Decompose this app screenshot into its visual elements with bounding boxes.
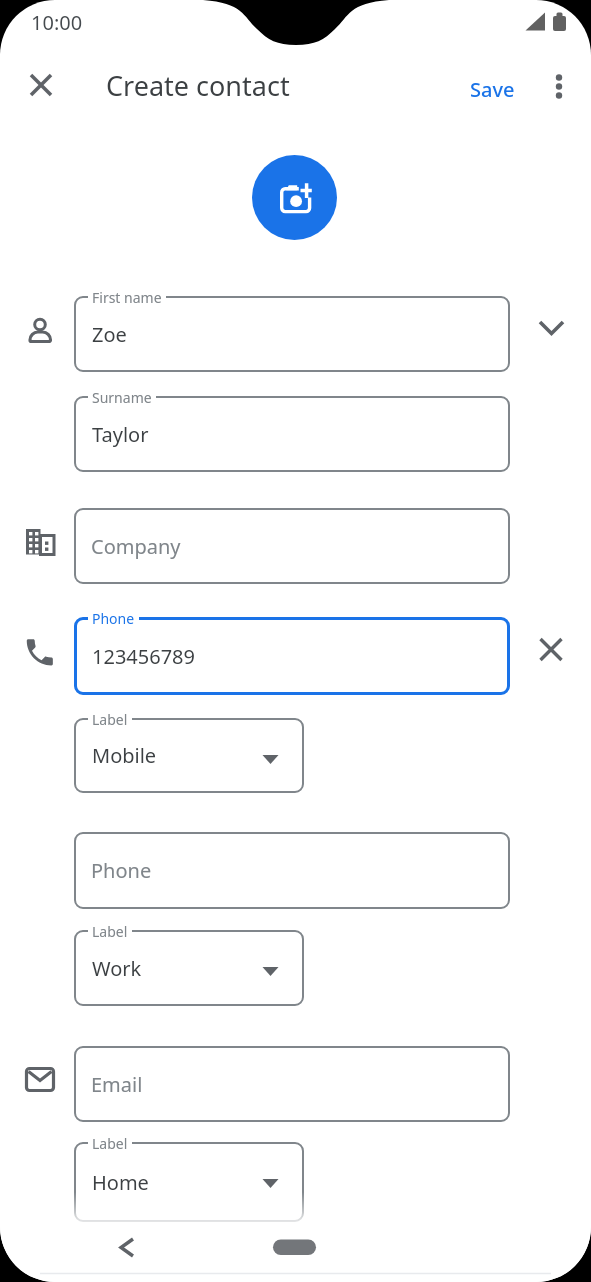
staticText: Work <box>92 955 142 982</box>
button[interactable] <box>541 68 577 104</box>
staticText: Mobile <box>92 742 157 769</box>
button[interactable]: Zoe <box>74 296 510 372</box>
button[interactable]: Work <box>74 930 304 1006</box>
staticText: First name <box>92 288 162 307</box>
staticText: Email <box>91 1071 143 1098</box>
button[interactable] <box>109 1230 145 1266</box>
staticText: Label <box>92 1134 128 1153</box>
button[interactable]: Mobile <box>74 718 304 793</box>
button[interactable] <box>252 155 337 240</box>
staticText: 123456789 <box>92 643 195 670</box>
button[interactable]: Save <box>460 68 525 111</box>
button[interactable]: Home <box>74 1142 304 1222</box>
staticText: Taylor <box>92 421 149 448</box>
button[interactable] <box>533 310 569 346</box>
button[interactable]: 123456789 <box>74 617 510 695</box>
button[interactable]: Company <box>74 508 510 584</box>
button[interactable]: Taylor <box>74 396 510 472</box>
staticText: Create contact <box>106 67 290 104</box>
staticText: Surname <box>92 388 152 407</box>
button[interactable]: Email <box>74 1046 510 1122</box>
button[interactable] <box>23 67 59 103</box>
button[interactable] <box>273 1236 316 1256</box>
button[interactable]: Phone <box>74 832 510 909</box>
staticText: Label <box>92 710 128 729</box>
staticText: Save <box>470 76 515 103</box>
staticText: Phone <box>92 609 135 628</box>
staticText: Phone <box>91 857 152 884</box>
staticText: Zoe <box>92 321 127 348</box>
staticText: Home <box>92 1169 149 1196</box>
button[interactable] <box>533 632 569 668</box>
staticText: Company <box>91 533 181 560</box>
staticText: 10:00 <box>31 9 83 36</box>
staticText: Label <box>92 922 128 941</box>
